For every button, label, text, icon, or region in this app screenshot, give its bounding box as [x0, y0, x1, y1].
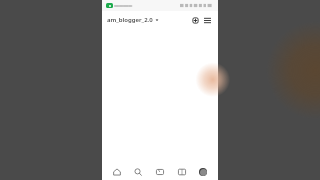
button[interactable]: Reels: [153, 165, 167, 179]
button[interactable]: New post: [189, 14, 201, 26]
button[interactable]: am_blogger_2.0: [107, 14, 159, 26]
staticText: am_blogger_2.0: [107, 16, 153, 24]
button[interactable]: Search: [131, 165, 145, 179]
button[interactable]: Home: [110, 165, 124, 179]
button[interactable]: Shop: [175, 165, 189, 179]
button[interactable]: Profile: [196, 165, 210, 179]
button[interactable]: Menu: [201, 14, 213, 26]
